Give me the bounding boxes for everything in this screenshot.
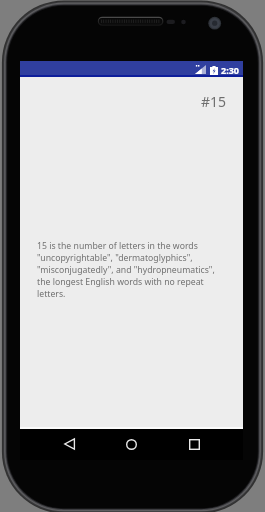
staticText: 15 is the number of letters in the words… <box>37 240 226 300</box>
button[interactable]: Back <box>49 429 89 459</box>
button[interactable]: Home <box>111 429 151 459</box>
staticText: #15 <box>201 92 227 111</box>
button[interactable]: Recent apps <box>174 429 214 459</box>
staticText: 2:30 <box>221 64 239 76</box>
